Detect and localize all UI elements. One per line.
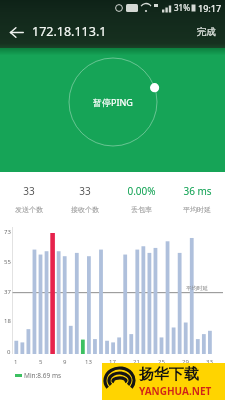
staticText: 丢包率 bbox=[131, 205, 152, 214]
staticText: 暂停PING bbox=[93, 96, 133, 108]
staticText: 33 bbox=[206, 358, 213, 366]
staticText: 完成 bbox=[197, 26, 216, 38]
staticText: 36 ms bbox=[183, 184, 212, 198]
button[interactable]: 33 bbox=[57, 172, 113, 214]
button[interactable]: Back bbox=[0, 16, 32, 48]
staticText: 25 bbox=[158, 358, 165, 366]
button[interactable]: 暂停PING bbox=[64, 53, 162, 151]
staticText: 5 bbox=[39, 358, 43, 366]
staticText: 21 bbox=[133, 358, 140, 366]
staticText: 9 bbox=[63, 358, 67, 366]
staticText: 平均时延 bbox=[183, 205, 211, 214]
staticText: 33 bbox=[23, 184, 35, 198]
button[interactable]: 36 ms bbox=[169, 172, 225, 214]
staticText: 接收个数 bbox=[71, 205, 99, 214]
staticText: 平均时延 bbox=[186, 285, 208, 292]
staticText: Min:8.69 ms bbox=[24, 371, 62, 380]
staticText: 0 bbox=[7, 348, 11, 356]
staticText: 0.00% bbox=[127, 184, 156, 198]
staticText: 发送个数 bbox=[15, 205, 43, 214]
button[interactable]: 完成 bbox=[188, 20, 225, 44]
button[interactable]: 33 bbox=[0, 172, 57, 214]
staticText: 13 bbox=[85, 358, 92, 366]
staticText: 73 bbox=[4, 228, 11, 236]
staticText: 55 bbox=[4, 258, 11, 266]
staticText: 17 bbox=[109, 358, 116, 366]
staticText: YANGHUA.NET bbox=[139, 384, 212, 398]
staticText: 172.18.113.1 bbox=[32, 23, 107, 40]
staticText: 18 bbox=[4, 317, 11, 325]
staticText: 37 bbox=[4, 288, 11, 296]
staticText: 19:17 bbox=[198, 2, 222, 14]
staticText: 33 bbox=[79, 184, 91, 198]
staticText: 1 bbox=[14, 358, 18, 366]
button[interactable]: 0.00% bbox=[113, 172, 169, 214]
staticText: 29 bbox=[182, 358, 189, 366]
staticText: 31% bbox=[174, 2, 190, 13]
staticText: 扬华下载 bbox=[139, 365, 199, 384]
